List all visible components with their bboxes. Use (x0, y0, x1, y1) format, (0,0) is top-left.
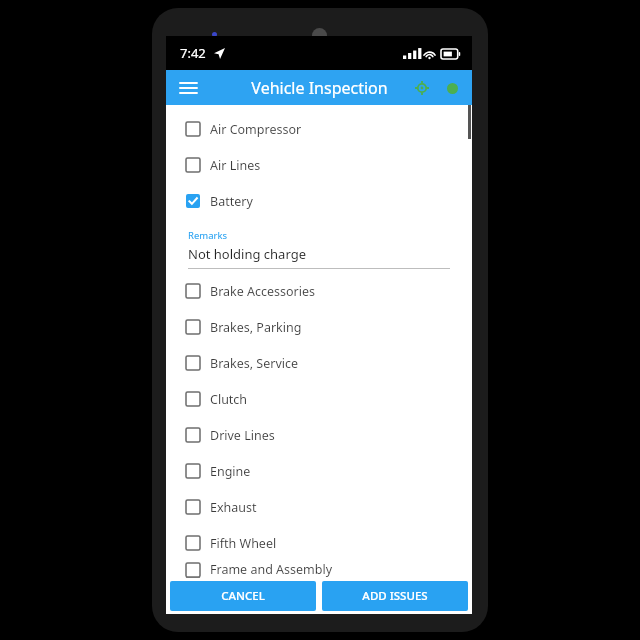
staticText: Drive Lines (210, 427, 275, 444)
staticText: Not holding charge (188, 245, 306, 263)
staticText: Fifth Wheel (210, 535, 277, 552)
button[interactable]: Clutch (166, 381, 472, 417)
staticText: Brakes, Parking (210, 319, 302, 336)
button[interactable]: Brakes, Parking (166, 309, 472, 345)
button[interactable]: CANCEL (170, 581, 316, 611)
staticText: Brake Accessories (210, 283, 316, 300)
button[interactable]: Fifth Wheel (166, 525, 472, 561)
button[interactable]: Connection status (440, 76, 464, 100)
staticText: Exhaust (210, 499, 257, 516)
button[interactable]: Brakes, Service (166, 345, 472, 381)
button[interactable]: Exhaust (166, 489, 472, 525)
staticText: Vehicle Inspection (251, 77, 388, 99)
staticText: Remarks (188, 229, 228, 242)
button[interactable]: Remarks (188, 229, 450, 269)
button[interactable]: Frame and Assembly (166, 561, 472, 578)
staticText: Frame and Assembly (210, 561, 333, 578)
button[interactable]: Brake Accessories (166, 273, 472, 309)
button[interactable]: Air Lines (166, 147, 472, 183)
button[interactable]: ADD ISSUES (322, 581, 468, 611)
button[interactable]: Air Compressor (166, 111, 472, 147)
staticText: Air Lines (210, 157, 261, 174)
staticText: CANCEL (221, 588, 265, 604)
staticText: 7:42 (180, 44, 206, 62)
staticText: Air Compressor (210, 121, 302, 138)
staticText: ADD ISSUES (362, 588, 428, 604)
button[interactable]: Drive Lines (166, 417, 472, 453)
button[interactable]: Open navigation menu (174, 74, 202, 102)
staticText: Battery (210, 193, 253, 210)
button[interactable]: Engine (166, 453, 472, 489)
staticText: Engine (210, 463, 251, 480)
button[interactable]: GPS location status (410, 76, 434, 100)
button[interactable]: Battery (166, 183, 472, 219)
staticText: Clutch (210, 391, 248, 408)
staticText: Brakes, Service (210, 355, 299, 372)
